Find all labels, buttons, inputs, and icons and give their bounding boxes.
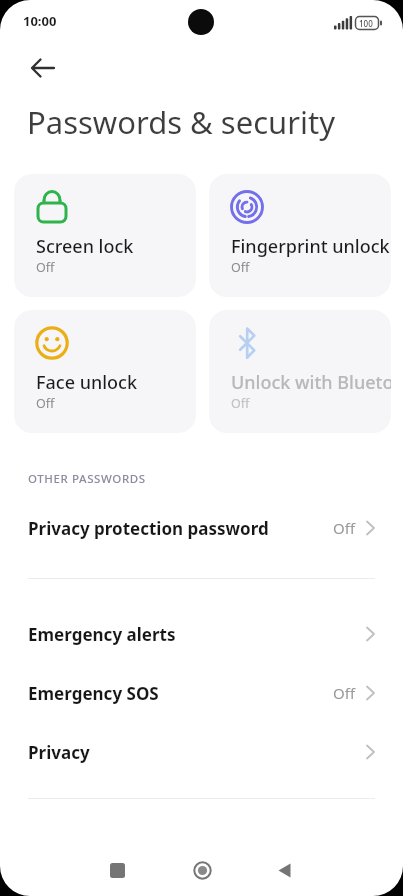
- button[interactable]: Unlock with Bluetooth device: [209, 310, 391, 433]
- staticText: Off: [333, 518, 356, 538]
- staticText: Emergency SOS: [28, 682, 159, 705]
- button[interactable]: [93, 846, 141, 894]
- button[interactable]: Screen lock: [14, 174, 196, 297]
- button[interactable]: Privacy: [0, 726, 403, 778]
- staticText: OTHER PASSWORDS: [28, 471, 146, 487]
- button[interactable]: [260, 846, 308, 894]
- staticText: Passwords & security: [27, 101, 336, 143]
- button[interactable]: Privacy protection password: [0, 502, 403, 554]
- staticText: Off: [231, 259, 250, 276]
- staticText: Unlock with Bluetooth device: [231, 370, 391, 395]
- button[interactable]: Fingerprint unlock: [209, 174, 391, 297]
- button[interactable]: Face unlock: [14, 310, 196, 433]
- staticText: 10:00: [23, 12, 57, 30]
- staticText: Privacy: [28, 741, 90, 764]
- staticText: Off: [231, 395, 250, 412]
- button[interactable]: [178, 846, 226, 894]
- staticText: 100: [359, 18, 373, 29]
- staticText: Fingerprint unlock: [231, 234, 391, 259]
- button[interactable]: Emergency SOS: [0, 667, 403, 719]
- staticText: Screen lock: [36, 234, 196, 259]
- staticText: Face unlock: [36, 370, 196, 395]
- staticText: Off: [36, 395, 55, 412]
- button[interactable]: Emergency alerts: [0, 608, 403, 660]
- staticText: Emergency alerts: [28, 623, 176, 646]
- button[interactable]: [16, 44, 72, 90]
- staticText: Off: [36, 259, 55, 276]
- staticText: Off: [333, 683, 356, 703]
- staticText: Privacy protection password: [28, 517, 269, 540]
